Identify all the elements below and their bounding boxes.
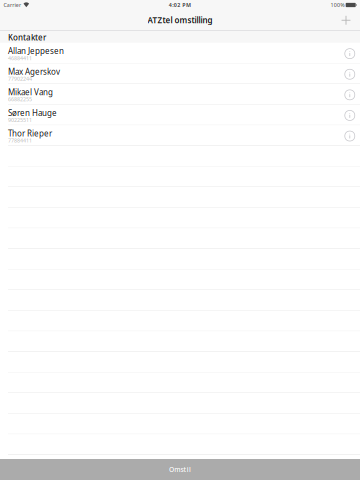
staticText: 66882255 <box>8 96 32 103</box>
button[interactable]: Omstil <box>0 459 360 480</box>
button[interactable]: Max Agerskov <box>0 63 360 84</box>
staticText: 100% <box>330 1 344 9</box>
button[interactable]: Allan Jeppesen <box>0 43 360 63</box>
staticText: Max Agerskov <box>8 66 60 77</box>
button[interactable]: Add <box>333 10 360 30</box>
button[interactable]: Thor Rieper <box>0 125 360 146</box>
staticText: Carrier <box>3 1 21 9</box>
button[interactable]: Søren Hauge <box>0 105 360 125</box>
staticText: Mikael Vang <box>8 87 53 97</box>
staticText: 46884411 <box>8 54 32 62</box>
staticText: Søren Hauge <box>8 107 57 118</box>
staticText: Omstil <box>169 465 191 474</box>
staticText: ATZtel omstilling <box>147 15 212 25</box>
staticText: Kontakter <box>8 32 46 43</box>
staticText: 4:02 PM <box>169 1 191 9</box>
staticText: Thor Rieper <box>8 128 52 139</box>
button[interactable]: Mikael Vang <box>0 84 360 105</box>
staticText: 77902244 <box>8 75 32 82</box>
staticText: 77884411 <box>8 137 32 144</box>
staticText: Allan Jeppesen <box>8 46 64 56</box>
staticText: 90225511 <box>8 116 32 123</box>
